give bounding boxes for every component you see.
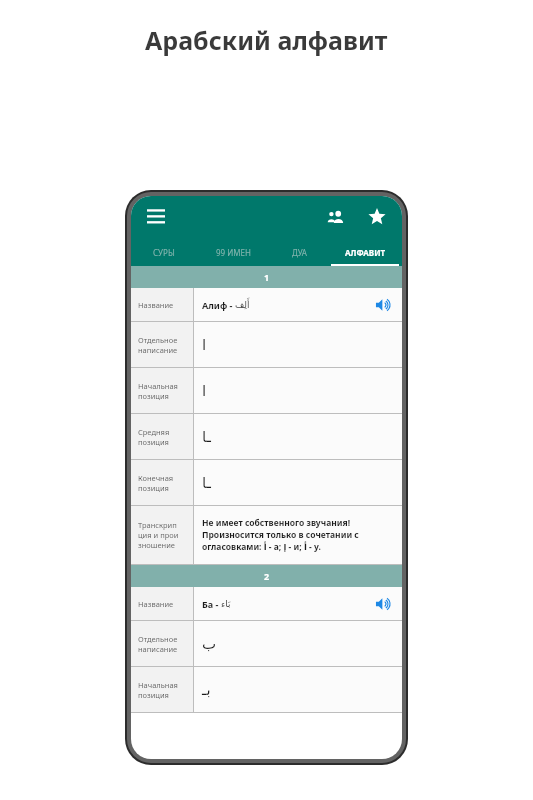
staticText: Начальная позиция [138,381,178,401]
button[interactable]: Название [131,288,402,321]
staticText: АЛФАВИТ [345,247,386,258]
staticText: Алиф - [202,299,235,311]
staticText: 1 [264,271,270,283]
staticText: Начальная позиция [138,680,178,700]
staticText: ـا [202,428,211,445]
button[interactable]: Название [131,587,402,620]
staticText: Название [138,599,174,609]
button[interactable]: Начальная позиция [131,368,402,413]
staticText: ـا [202,474,211,491]
button[interactable]: Menu [141,202,171,232]
button[interactable]: Favorites [362,202,392,232]
button[interactable]: Транскрип ция и прои зношение [131,506,402,564]
button[interactable]: Отдельное написание [131,621,402,666]
staticText: Не имеет собственного звучания! Произнос… [202,517,394,553]
button[interactable]: АЛФАВИТ [328,238,402,266]
staticText: ا [202,382,207,399]
staticText: بَاء [221,599,231,609]
staticText: Отдельное написание [138,634,178,654]
button[interactable]: 99 ИМЕН [196,238,270,266]
staticText: 2 [264,570,270,582]
staticText: ا [202,336,207,353]
staticText: ДУА [292,247,307,258]
staticText: Ба - [202,598,221,610]
staticText: СУРЫ [153,247,175,258]
staticText: بـ [202,681,211,698]
button[interactable]: Средняя позиция [131,414,402,459]
button[interactable]: СУРЫ [131,238,196,266]
button[interactable]: Play sound [372,593,394,615]
staticText: Транскрип ция и прои зношение [138,520,179,550]
button[interactable]: People [320,202,350,232]
staticText: أَلِف [235,300,250,310]
staticText: Арабский алфавит [145,23,388,57]
button[interactable]: ДУА [270,238,328,266]
staticText: ب [202,635,217,652]
staticText: 99 ИМЕН [216,247,251,258]
staticText: Название [138,300,174,310]
staticText: Средняя позиция [138,427,170,447]
button[interactable]: Отдельное написание [131,322,402,367]
staticText: Отдельное написание [138,335,178,355]
button[interactable]: Play sound [372,294,394,316]
button[interactable]: Начальная позиция [131,667,402,712]
button[interactable]: Конечная позиция [131,460,402,505]
staticText: Конечная позиция [138,473,174,493]
